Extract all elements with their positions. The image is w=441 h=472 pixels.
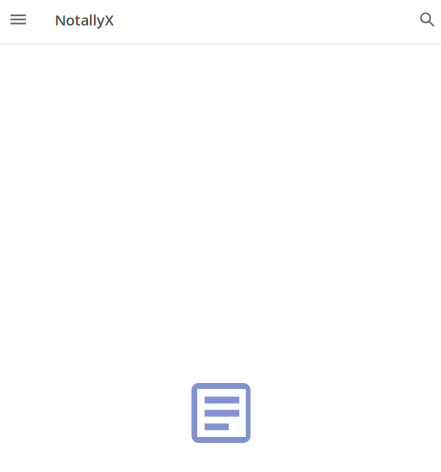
staticText: NotallyX [55,10,114,29]
button[interactable]: NotallyX [55,1,114,39]
button[interactable]: Open navigation menu [1,0,35,38]
button[interactable]: Search [408,0,441,38]
